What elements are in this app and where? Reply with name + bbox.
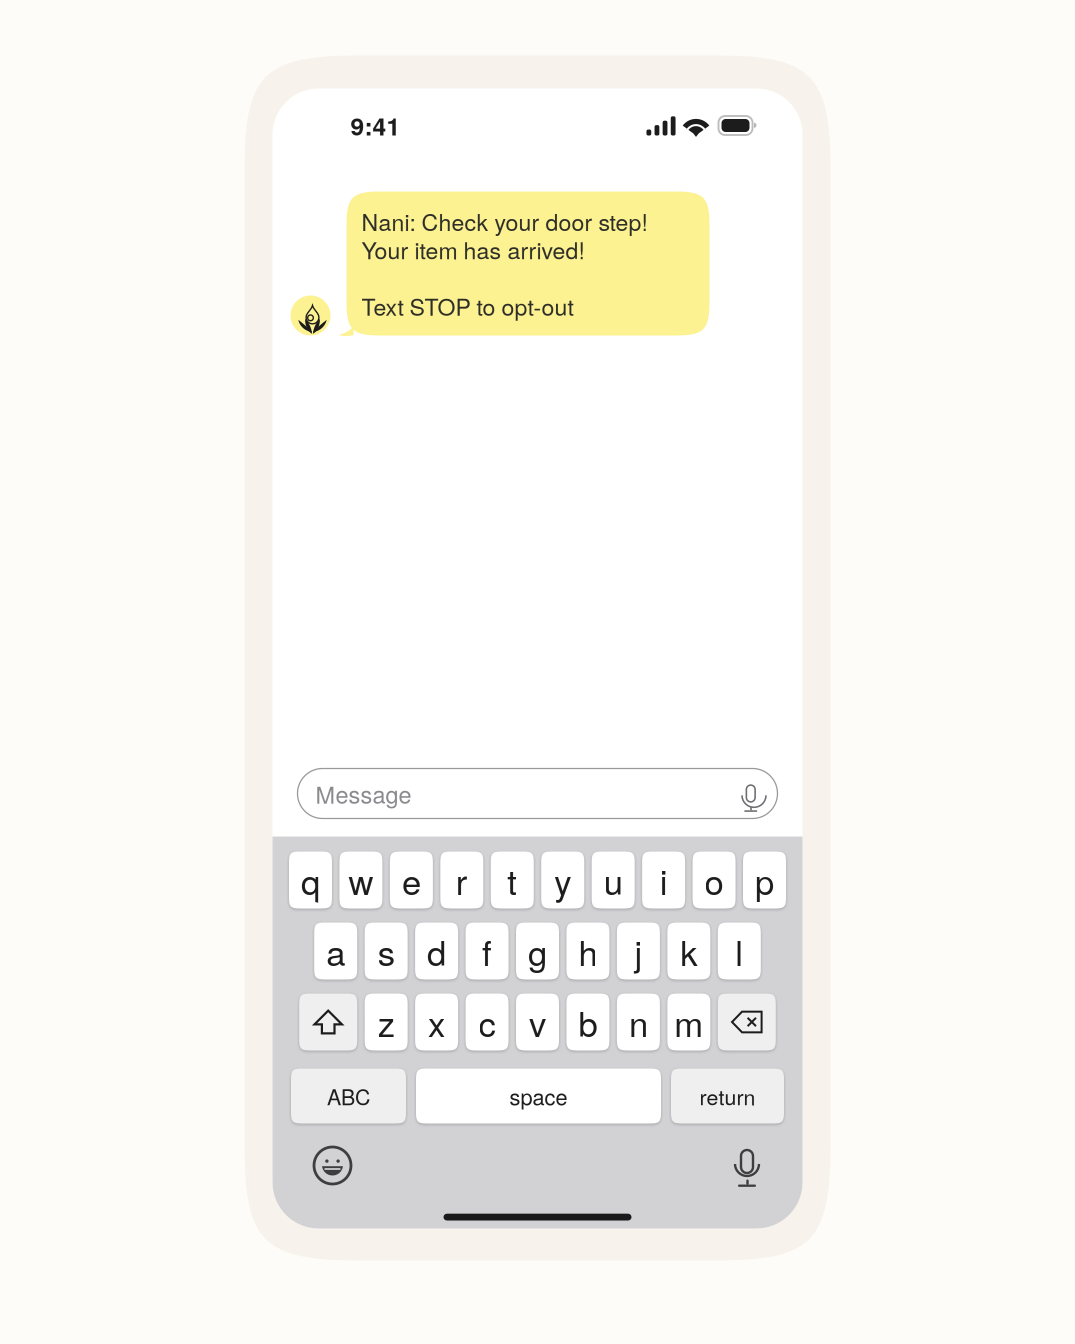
staticText: t bbox=[507, 855, 517, 905]
staticText: Message bbox=[315, 777, 411, 810]
staticText: n bbox=[629, 997, 648, 1047]
button[interactable]: Dictate bbox=[721, 1140, 771, 1182]
button[interactable]: a bbox=[314, 922, 357, 979]
button[interactable]: k bbox=[667, 922, 710, 979]
staticText: space bbox=[509, 1080, 567, 1111]
staticText: r bbox=[456, 855, 468, 905]
button[interactable]: o bbox=[693, 851, 736, 908]
button[interactable]: v bbox=[516, 993, 559, 1050]
button[interactable]: n bbox=[617, 993, 660, 1050]
staticText: h bbox=[578, 926, 597, 976]
staticText: return bbox=[699, 1081, 755, 1111]
staticText: x bbox=[428, 997, 445, 1047]
button[interactable]: u bbox=[592, 851, 635, 908]
button[interactable]: r bbox=[440, 851, 483, 908]
staticText: z bbox=[378, 997, 395, 1047]
staticText: b bbox=[578, 997, 597, 1047]
button[interactable]: j bbox=[617, 922, 660, 979]
button[interactable]: m bbox=[667, 993, 710, 1050]
button[interactable]: space bbox=[416, 1068, 661, 1123]
staticText: i bbox=[660, 855, 668, 905]
staticText: d bbox=[427, 926, 446, 976]
button[interactable]: e bbox=[390, 851, 433, 908]
button[interactable]: f bbox=[466, 922, 509, 979]
button[interactable]: Shift bbox=[299, 993, 357, 1050]
staticText: e bbox=[402, 855, 421, 905]
staticText: m bbox=[674, 997, 703, 1047]
staticText: 9:41 bbox=[350, 108, 400, 143]
button[interactable]: g bbox=[516, 922, 559, 979]
staticText: v bbox=[529, 997, 546, 1047]
button[interactable]: d bbox=[415, 922, 458, 979]
button[interactable]: b bbox=[566, 993, 609, 1050]
staticText: Nani: Check your door step! Your item ha… bbox=[361, 207, 647, 320]
button[interactable]: i bbox=[642, 851, 685, 908]
button[interactable]: p bbox=[743, 851, 786, 908]
button[interactable]: w bbox=[339, 851, 382, 908]
button[interactable]: s bbox=[365, 922, 408, 979]
button[interactable]: h bbox=[566, 922, 609, 979]
staticText: q bbox=[301, 855, 320, 905]
button[interactable]: Emoji keyboard bbox=[307, 1140, 357, 1182]
button[interactable]: t bbox=[491, 851, 534, 908]
staticText: l bbox=[735, 926, 743, 976]
button[interactable]: l bbox=[718, 922, 761, 979]
staticText: k bbox=[680, 926, 697, 976]
staticText: y bbox=[554, 855, 571, 905]
staticText: j bbox=[634, 926, 642, 976]
button[interactable]: ABC bbox=[291, 1068, 406, 1123]
button[interactable]: c bbox=[466, 993, 509, 1050]
button[interactable]: q bbox=[289, 851, 332, 908]
button[interactable]: x bbox=[415, 993, 458, 1050]
staticText: ABC bbox=[327, 1081, 370, 1111]
staticText: p bbox=[755, 855, 774, 905]
staticText: f bbox=[482, 926, 492, 976]
button[interactable]: return bbox=[671, 1068, 784, 1123]
staticText: s bbox=[378, 926, 395, 976]
staticText: g bbox=[528, 926, 547, 976]
button[interactable]: y bbox=[541, 851, 584, 908]
staticText: c bbox=[479, 997, 496, 1047]
staticText: o bbox=[705, 855, 724, 905]
button[interactable]: Delete bbox=[718, 993, 776, 1050]
button[interactable]: z bbox=[365, 993, 408, 1050]
staticText: a bbox=[326, 926, 345, 976]
staticText: w bbox=[348, 855, 373, 905]
staticText: u bbox=[604, 855, 623, 905]
